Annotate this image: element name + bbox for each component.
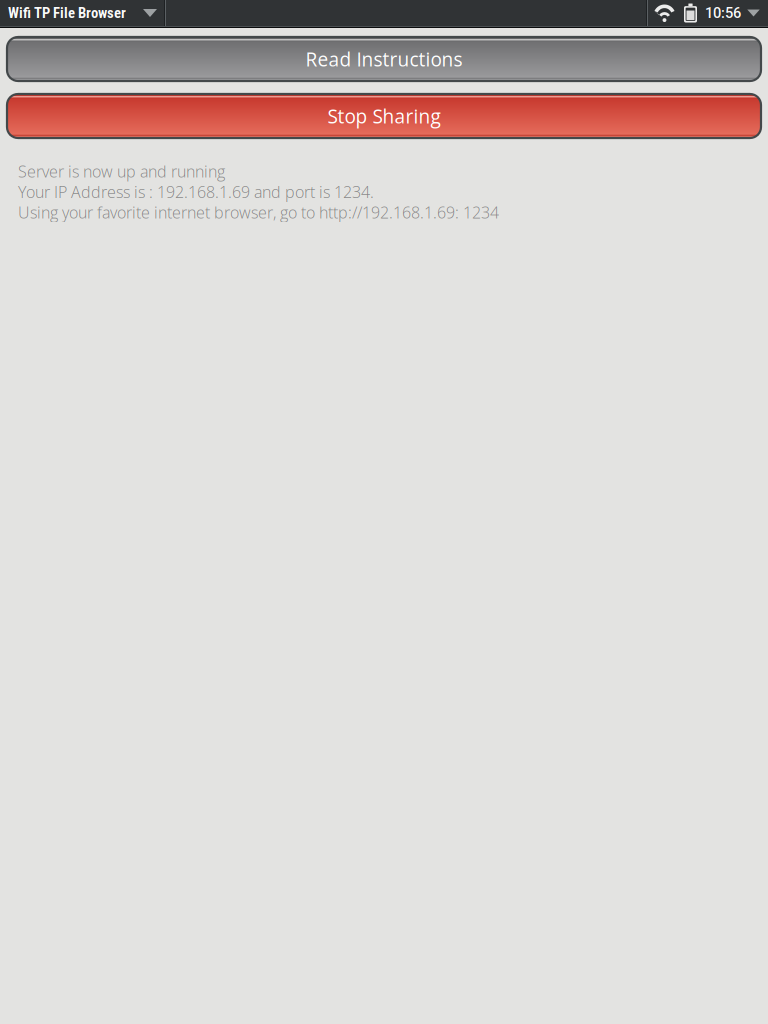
staticText: 10:56 (705, 4, 741, 22)
staticText: Your IP Address is : 192.168.1.69 and po… (18, 181, 374, 203)
staticText: Read Instructions (305, 46, 462, 72)
staticText: Server is now up and running (18, 160, 225, 182)
button[interactable]: More options (741, 0, 766, 26)
button[interactable]: Stop Sharing (7, 94, 761, 138)
staticText: Stop Sharing (327, 103, 440, 129)
button[interactable]: Wifi TP File Browser (0, 0, 164, 26)
staticText: Using your favorite internet browser, go… (18, 201, 499, 223)
staticText: Wifi TP File Browser (8, 4, 126, 22)
button[interactable]: Read Instructions (7, 37, 761, 81)
